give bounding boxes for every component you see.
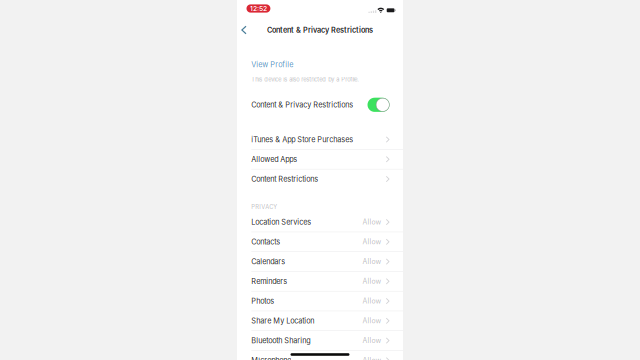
staticText: Allow <box>363 297 382 305</box>
staticText: Allow <box>363 218 382 226</box>
staticText: Contacts <box>251 237 280 246</box>
staticText: 12:52 <box>250 4 267 13</box>
button[interactable]: Location Services <box>237 212 403 232</box>
staticText: Calendars <box>251 257 285 266</box>
staticText: Allow <box>363 317 382 325</box>
staticText: Reminders <box>251 277 287 286</box>
staticText: Content & Privacy Restrictions <box>251 100 353 109</box>
staticText: View Profile <box>251 60 293 69</box>
button[interactable]: Contacts <box>237 232 403 252</box>
button[interactable]: Content Restrictions <box>237 169 403 189</box>
staticText: Location Services <box>251 218 311 226</box>
button[interactable]: Bluetooth Sharing <box>237 331 403 351</box>
staticText: Allow <box>363 356 382 360</box>
staticText: Allowed Apps <box>251 155 297 164</box>
staticText: Photos <box>251 297 274 305</box>
staticText: Content & Privacy Restrictions <box>267 26 373 34</box>
staticText: Allow <box>363 238 382 246</box>
staticText: Content Restrictions <box>251 175 318 183</box>
staticText: PRIVACY <box>251 203 277 210</box>
button[interactable]: Content & Privacy Restrictions <box>237 97 403 112</box>
staticText: Bluetooth Sharing <box>251 336 310 345</box>
staticText: Allow <box>363 277 382 285</box>
button[interactable]: Reminders <box>237 272 403 291</box>
staticText: Share My Location <box>251 316 314 325</box>
button[interactable]: Microphone <box>237 351 403 360</box>
staticText: This device is also restricted by a Prof… <box>251 76 359 83</box>
staticText: Allow <box>363 336 382 345</box>
button[interactable]: Back <box>237 21 255 39</box>
staticText: Microphone <box>251 356 291 360</box>
button[interactable]: Photos <box>237 291 403 311</box>
button[interactable]: Calendars <box>237 252 403 272</box>
button[interactable]: View Profile <box>237 59 403 70</box>
staticText: Allow <box>363 257 382 266</box>
button[interactable]: Share My Location <box>237 311 403 331</box>
staticText: iTunes & App Store Purchases <box>251 135 353 144</box>
button[interactable]: iTunes & App Store Purchases <box>237 130 403 150</box>
button[interactable]: Allowed Apps <box>237 150 403 169</box>
